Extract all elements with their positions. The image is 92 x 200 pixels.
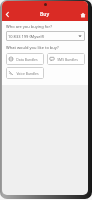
button[interactable]: Home [77,8,88,21]
staticText: Voice Bundles [16,71,39,76]
staticText: 10 833 199 (Myself) [8,34,45,39]
staticText: Data Bundles [16,57,38,62]
staticText: Buy [40,11,50,18]
staticText: SMS Bundles [57,57,78,62]
button[interactable]: Back [2,8,13,21]
button[interactable]: 10 833 199 (Myself) [6,31,85,41]
staticText: Who are you buying for? [6,24,52,29]
staticText: What would you like to buy? [6,45,59,50]
button[interactable]: SMS Bundles [47,53,85,65]
button[interactable]: Voice Bundles [6,67,44,79]
button[interactable]: Data Bundles [6,53,44,65]
